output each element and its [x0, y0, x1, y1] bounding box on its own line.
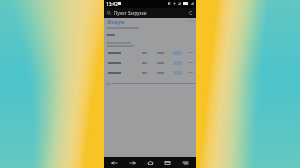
button[interactable]: Back [107, 157, 122, 168]
button[interactable]: Menu [178, 157, 193, 168]
button[interactable]: Форум [107, 19, 125, 26]
staticText: вход [188, 19, 194, 23]
button[interactable]: Tabs [160, 157, 175, 168]
button[interactable]: Forward [125, 157, 140, 168]
button[interactable]: Пункт Загрузки [104, 8, 196, 18]
staticText: Форум [107, 19, 125, 26]
staticText: Пункт Загрузки [114, 10, 147, 16]
button[interactable] [104, 61, 196, 66]
button[interactable]: Home [143, 157, 158, 168]
staticText: 13:42 [106, 1, 118, 7]
button[interactable] [104, 51, 196, 56]
button[interactable]: вход [188, 19, 194, 23]
button[interactable] [104, 71, 196, 76]
other: Reload [189, 11, 193, 15]
